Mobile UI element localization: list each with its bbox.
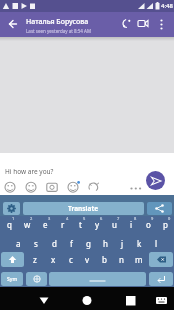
staticText: f (70, 238, 73, 249)
staticText: Last seen yesterday at 8:54 AM (26, 28, 92, 34)
staticText: Наталья Борусова (26, 17, 89, 27)
button[interactable]: l (148, 236, 165, 251)
button[interactable]: n (113, 252, 130, 267)
staticText: c (69, 254, 73, 265)
staticText: Translate (68, 204, 99, 213)
button[interactable]: m (130, 252, 147, 267)
button[interactable]: Наталья Борусова (26, 17, 92, 34)
button[interactable]: c (62, 252, 79, 267)
staticText: Sym (7, 276, 18, 283)
staticText: 4 (66, 216, 69, 221)
staticText: p (163, 219, 168, 230)
button[interactable]: v (79, 252, 96, 267)
button[interactable] (0, 181, 145, 194)
button[interactable] (146, 171, 165, 190)
staticText: 0 (168, 216, 171, 221)
staticText: 9 (151, 216, 154, 221)
button[interactable]: k (131, 236, 148, 251)
staticText: r (61, 219, 65, 230)
button[interactable]: j (114, 236, 131, 251)
staticText: m (135, 254, 143, 265)
staticText: 6 (100, 216, 103, 221)
button[interactable]: 8 (123, 216, 140, 232)
button[interactable]: s (27, 236, 45, 251)
button[interactable]: 3 (36, 216, 54, 232)
button[interactable]: 5 (72, 216, 89, 232)
staticText: y (95, 219, 100, 230)
staticText: l (155, 238, 158, 249)
button[interactable] (3, 202, 20, 215)
staticText: i (130, 219, 133, 230)
button[interactable]: h (97, 236, 114, 251)
button[interactable] (49, 272, 146, 286)
staticText: v (85, 254, 90, 265)
staticText: u (112, 219, 117, 230)
staticText: Hi how are you? (5, 167, 54, 176)
button[interactable] (1, 252, 24, 267)
button[interactable] (136, 17, 150, 31)
button[interactable]: 2 (18, 216, 36, 232)
button[interactable]: 0 (157, 216, 174, 232)
staticText: s (34, 238, 38, 249)
button[interactable] (149, 272, 173, 286)
button[interactable]: z (26, 252, 44, 267)
staticText: h (103, 238, 108, 249)
staticText: 2 (30, 216, 33, 221)
staticText: a (16, 238, 21, 249)
button[interactable]: 4 (54, 216, 72, 232)
button[interactable]: g (80, 236, 97, 251)
button[interactable] (156, 16, 167, 33)
button[interactable]: d (45, 236, 63, 251)
button[interactable] (118, 288, 142, 309)
staticText: 5 (83, 216, 86, 221)
button[interactable]: 1 (0, 216, 18, 232)
button[interactable]: 7 (106, 216, 123, 232)
button[interactable]: b (96, 252, 113, 267)
staticText: z (33, 254, 37, 265)
button[interactable]: a (9, 236, 27, 251)
button[interactable] (32, 288, 56, 309)
staticText: b (102, 254, 107, 265)
staticText: 4:48 (161, 2, 173, 10)
staticText: j (121, 238, 124, 249)
staticText: 7 (117, 216, 120, 221)
button[interactable]: Sym (1, 272, 23, 286)
button[interactable]: 6 (89, 216, 106, 232)
button[interactable] (26, 272, 47, 286)
button[interactable] (4, 16, 21, 33)
button[interactable]: 9 (140, 216, 157, 232)
button[interactable] (120, 17, 133, 30)
staticText: q (7, 219, 12, 230)
button[interactable]: x (44, 252, 62, 267)
staticText: o (146, 219, 151, 230)
staticText: w (24, 219, 31, 230)
button[interactable] (75, 288, 99, 309)
staticText: 8 (134, 216, 137, 221)
staticText: k (137, 238, 142, 249)
button[interactable]: Translate (23, 202, 144, 215)
staticText: n (119, 254, 124, 265)
staticText: x (51, 254, 56, 265)
button[interactable] (149, 252, 173, 267)
staticText: e (43, 219, 48, 230)
staticText: 3 (48, 216, 51, 221)
staticText: 1 (12, 216, 15, 221)
button[interactable] (147, 202, 172, 215)
button[interactable]: f (63, 236, 80, 251)
staticText: d (52, 238, 57, 249)
staticText: g (86, 238, 91, 249)
button[interactable] (152, 288, 172, 309)
staticText: t (79, 219, 82, 230)
